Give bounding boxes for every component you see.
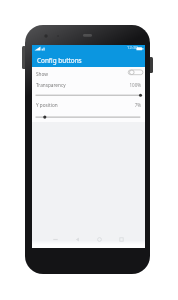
- button[interactable]: Y position: [32, 99, 145, 122]
- staticText: Config buttons: [37, 56, 82, 65]
- staticText: 100%: [128, 82, 141, 88]
- button[interactable]: 12:30: [32, 45, 145, 67]
- staticText: Show: [36, 71, 48, 77]
- button[interactable]: Back: [73, 235, 82, 244]
- staticText: 12:30: [127, 45, 138, 51]
- staticText: 7%: [128, 102, 141, 108]
- button[interactable]: Home: [95, 235, 104, 244]
- button[interactable]: Menu: [51, 235, 60, 244]
- button[interactable]: Show: [32, 67, 145, 80]
- button[interactable]: Transparency: [32, 79, 145, 100]
- staticText: Transparency: [36, 82, 66, 88]
- staticText: Y position: [36, 102, 58, 108]
- button[interactable]: Recents: [117, 235, 126, 244]
